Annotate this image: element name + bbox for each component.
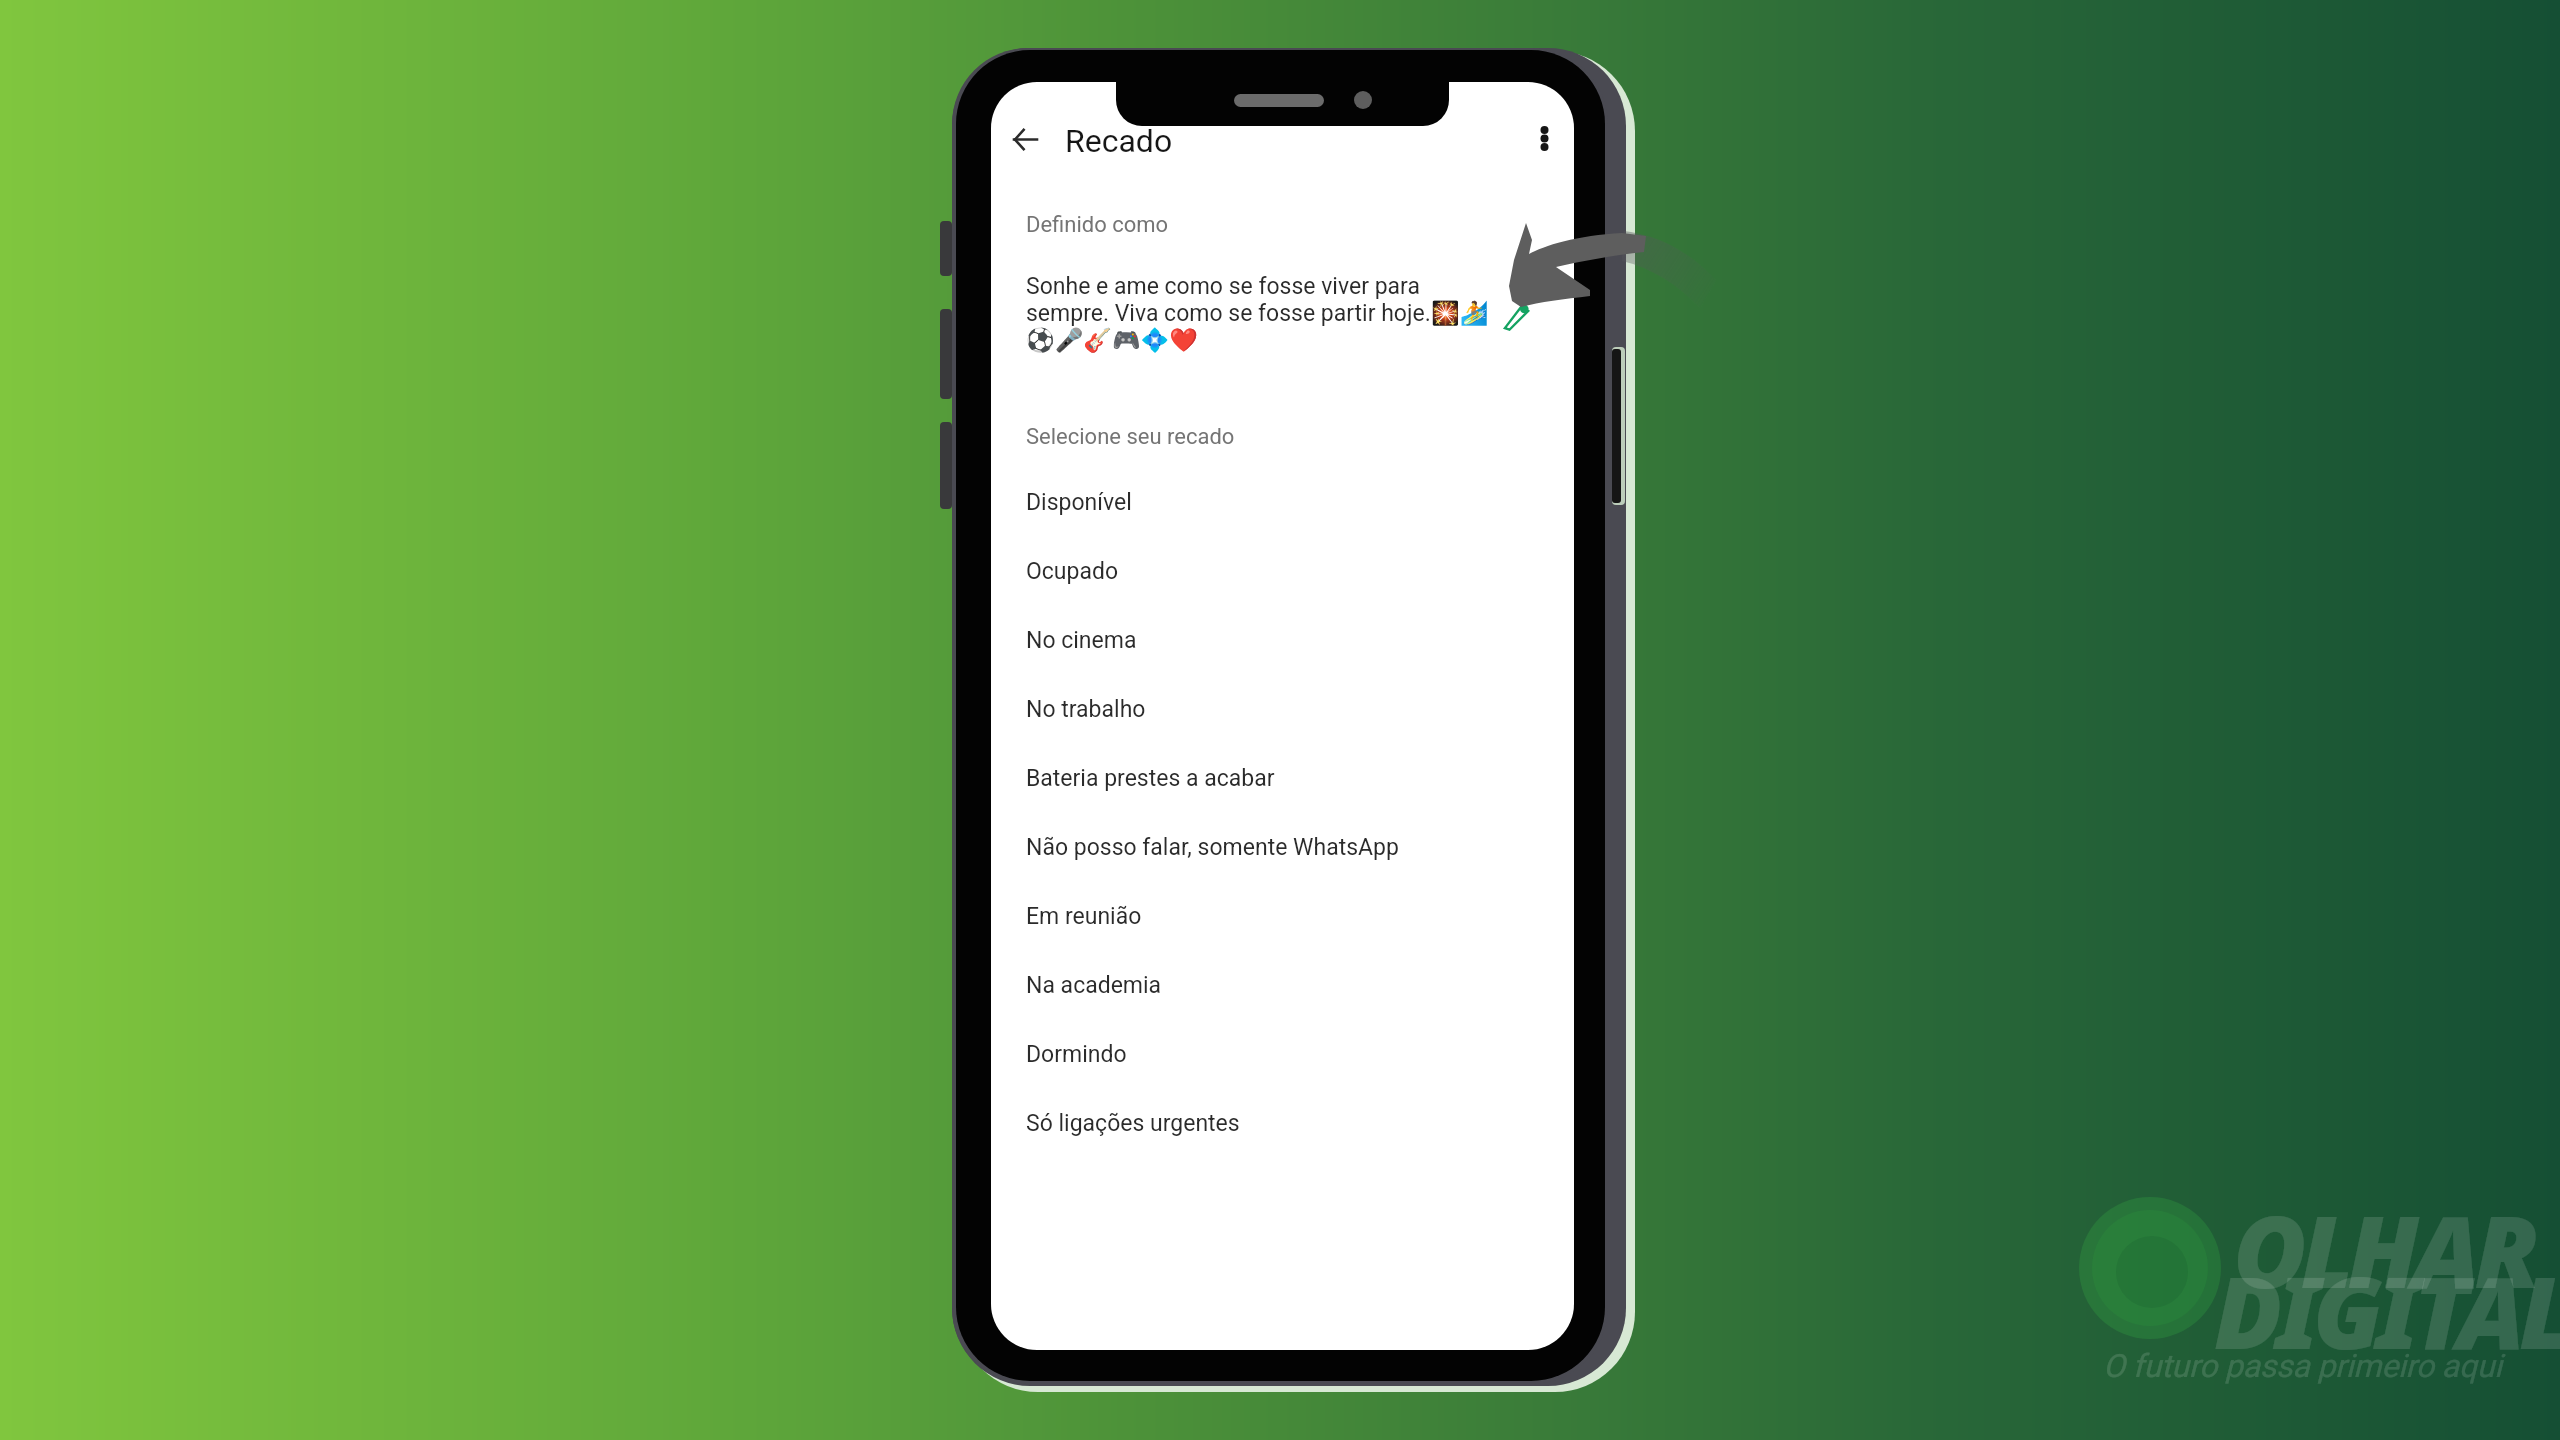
button[interactable]: Em reunião	[991, 882, 1574, 951]
staticText: Não posso falar, somente WhatsApp	[1026, 834, 1399, 861]
staticText: Sonhe e ame como se fosse viver para	[1026, 273, 1420, 300]
staticText: Em reunião	[1026, 903, 1142, 930]
staticText: Selecione seu recado	[1026, 424, 1235, 450]
staticText: OLHAR	[2233, 1181, 2534, 1317]
button[interactable]: Sonhe e ame como se fosse viver para	[991, 258, 1574, 358]
button[interactable]: No trabalho	[991, 675, 1574, 744]
staticText: Bateria prestes a acabar	[1026, 765, 1275, 792]
staticText: Disponível	[1026, 489, 1132, 516]
staticText: Só ligações urgentes	[1026, 1110, 1240, 1137]
button[interactable]: Na academia	[991, 951, 1574, 1020]
staticText: Na academia	[1026, 972, 1162, 999]
staticText: Recado	[1065, 122, 1173, 160]
staticText: DIGITAL	[2214, 1242, 2560, 1378]
staticText: O futuro passa primeiro aqui	[2103, 1347, 2502, 1385]
staticText: Dormindo	[1026, 1041, 1127, 1068]
button[interactable]: Bateria prestes a acabar	[991, 744, 1574, 813]
staticText: No cinema	[1026, 627, 1137, 654]
button[interactable]: Disponível	[991, 468, 1574, 537]
staticText: ⚽🎤🎸🎮💠❤	[1026, 327, 1198, 354]
staticText: 🎇🏄	[1431, 300, 1489, 327]
button[interactable]: Back	[996, 110, 1054, 168]
button[interactable]: No cinema	[991, 606, 1574, 675]
button[interactable]: Só ligações urgentes	[991, 1089, 1574, 1158]
button[interactable]: Dormindo	[991, 1020, 1574, 1089]
staticText: sempre. Viva como se fosse partir hoje.	[1026, 300, 1431, 327]
staticText: Definido como	[1026, 212, 1169, 238]
staticText: No trabalho	[1026, 696, 1146, 723]
button[interactable]: Ocupado	[991, 537, 1574, 606]
button[interactable]: Não posso falar, somente WhatsApp	[991, 813, 1574, 882]
staticText: Ocupado	[1026, 558, 1119, 585]
button[interactable]: More options	[1515, 109, 1573, 167]
